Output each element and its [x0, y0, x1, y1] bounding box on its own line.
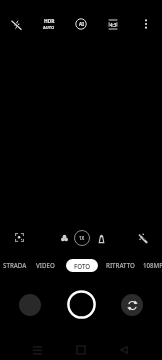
button[interactable]: FOTO — [66, 259, 98, 272]
button[interactable]: VIDEO — [23, 258, 67, 272]
button[interactable]: More settings — [131, 12, 161, 36]
button[interactable]: Aspect ratio 4:3 — [98, 12, 128, 36]
button[interactable]: Magic filters — [132, 228, 152, 248]
staticText: VIDEO — [36, 261, 55, 269]
button[interactable]: Shutter — [66, 289, 96, 319]
button[interactable]: Switch camera — [121, 294, 143, 316]
staticText: 108MP — [143, 261, 162, 269]
staticText: 4:3 — [110, 22, 117, 28]
button[interactable]: HDR auto — [34, 12, 64, 36]
button[interactable]: AI scene detection — [66, 12, 96, 36]
button[interactable]: RITRATTO — [98, 258, 142, 272]
button[interactable]: 108MP — [131, 258, 162, 272]
staticText: HDR — [44, 18, 55, 25]
button[interactable]: Filters — [55, 229, 73, 247]
button[interactable]: Back — [104, 340, 144, 360]
staticText: AI — [79, 21, 84, 27]
staticText: FOTO — [74, 262, 91, 270]
staticText: RITRATTO — [106, 261, 135, 269]
button[interactable]: Flash off — [1, 12, 31, 36]
staticText: STRADA — [3, 261, 27, 269]
button[interactable]: STRADA — [0, 258, 37, 272]
button[interactable]: Zoom 1x — [73, 229, 91, 247]
button[interactable]: Gallery — [19, 294, 41, 316]
button[interactable]: Home — [61, 340, 101, 360]
button[interactable]: Aperture — [92, 229, 110, 247]
button[interactable]: Recent apps — [17, 340, 57, 360]
staticText: AUTO — [43, 25, 55, 30]
button[interactable]: Document scan — [9, 227, 29, 247]
staticText: 1X — [79, 235, 85, 241]
